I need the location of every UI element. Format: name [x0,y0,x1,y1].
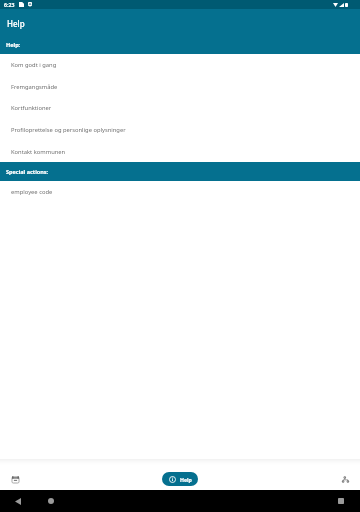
staticText: Profiloprettelse og personlige oplysning… [11,126,126,134]
button[interactable]: employee code [0,181,360,203]
button[interactable]: Kortfunktioner [0,97,360,119]
button[interactable]: Share [337,471,353,487]
button[interactable]: Profiloprettelse og personlige oplysning… [0,119,360,141]
button[interactable]: Help [162,472,198,486]
staticText: Help: [6,41,21,48]
staticText: Kontakt kommunen [11,148,66,156]
staticText: Special actions: [6,168,49,175]
staticText: Kom godt i gang [11,61,57,69]
button[interactable]: Kom godt i gang [0,54,360,76]
button[interactable]: Recents [332,492,350,510]
staticText: Fremgangsmåde [11,83,58,91]
button[interactable]: Kontakt kommunen [0,141,360,162]
staticText: Kortfunktioner [11,104,52,112]
button[interactable]: Fremgangsmåde [0,76,360,97]
staticText: 6:23 [4,1,15,8]
button[interactable]: Calendar [7,471,23,487]
staticText: Help [7,18,25,29]
staticText: employee code [11,188,53,196]
button[interactable]: Home [42,492,60,510]
staticText: Help [180,476,192,483]
button[interactable]: Back [9,492,27,510]
